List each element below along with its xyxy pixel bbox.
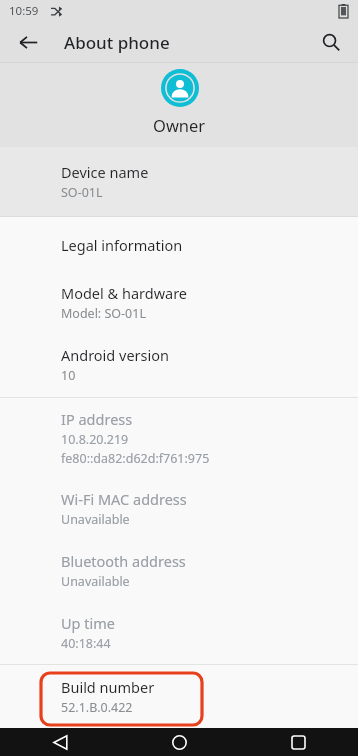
staticText: Legal information <box>61 235 183 255</box>
staticText: IP address <box>61 409 133 429</box>
button[interactable]: Recent apps <box>281 728 315 756</box>
staticText: Android version <box>61 345 169 365</box>
staticText: Up time <box>61 613 115 633</box>
staticText: 10 <box>61 367 76 384</box>
staticText: Model & hardware <box>61 283 188 303</box>
staticText: SO-01L <box>61 184 103 201</box>
staticText: Unavailable <box>61 573 130 590</box>
button[interactable]: IP address <box>0 398 358 478</box>
button[interactable]: Up time <box>0 602 358 664</box>
staticText: Unavailable <box>61 511 130 528</box>
button[interactable]: Wi-Fi MAC address <box>0 478 358 540</box>
staticText: Model: SO-01L <box>61 305 146 322</box>
staticText: Device name <box>61 162 149 182</box>
button[interactable]: Bluetooth address <box>0 540 358 602</box>
staticText: 10.8.20.219 <box>61 431 129 448</box>
button[interactable]: Owner <box>0 63 358 147</box>
button[interactable]: Build number <box>0 665 358 728</box>
button[interactable]: Model & hardware <box>0 273 358 334</box>
staticText: 10:59 <box>9 3 39 19</box>
button[interactable]: Android version <box>0 334 358 397</box>
button[interactable]: Device name <box>0 147 358 216</box>
staticText: 52.1.B.0.422 <box>61 699 133 716</box>
staticText: Owner <box>153 114 206 136</box>
staticText: Build number <box>61 677 155 697</box>
button[interactable]: Back <box>43 728 77 756</box>
button[interactable]: Search <box>314 25 348 59</box>
staticText: About phone <box>64 31 170 54</box>
button[interactable]: Back <box>12 26 44 58</box>
button[interactable]: Home <box>162 728 196 756</box>
button[interactable]: Legal information <box>0 217 358 273</box>
staticText: Bluetooth address <box>61 551 186 571</box>
staticText: Wi-Fi MAC address <box>61 489 187 509</box>
staticText: fe80::da82:d62d:f761:975 <box>61 450 210 467</box>
staticText: 40:18:44 <box>61 635 111 652</box>
